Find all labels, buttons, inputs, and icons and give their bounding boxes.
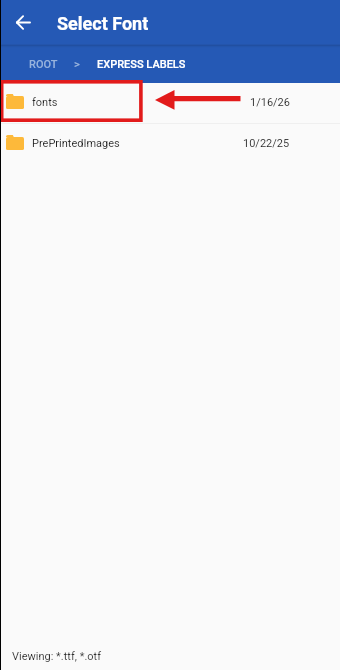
button[interactable]: ROOT — [29, 46, 58, 83]
button[interactable]: fonts — [0, 83, 340, 123]
staticText: fonts — [32, 96, 58, 109]
button[interactable]: EXPRESS LABELS — [97, 46, 186, 83]
staticText: 1/16/26 — [250, 96, 290, 109]
staticText: Viewing: *.ttf, *.otf — [12, 650, 101, 663]
button[interactable]: PrePrintedImages — [0, 124, 340, 164]
staticText: > — [74, 58, 80, 71]
staticText: PrePrintedImages — [32, 137, 120, 150]
staticText: EXPRESS LABELS — [97, 58, 186, 71]
staticText: ROOT — [29, 58, 58, 71]
staticText: Select Font — [57, 13, 149, 34]
staticText: 10/22/25 — [243, 137, 290, 150]
button[interactable]: Back — [9, 8, 37, 36]
